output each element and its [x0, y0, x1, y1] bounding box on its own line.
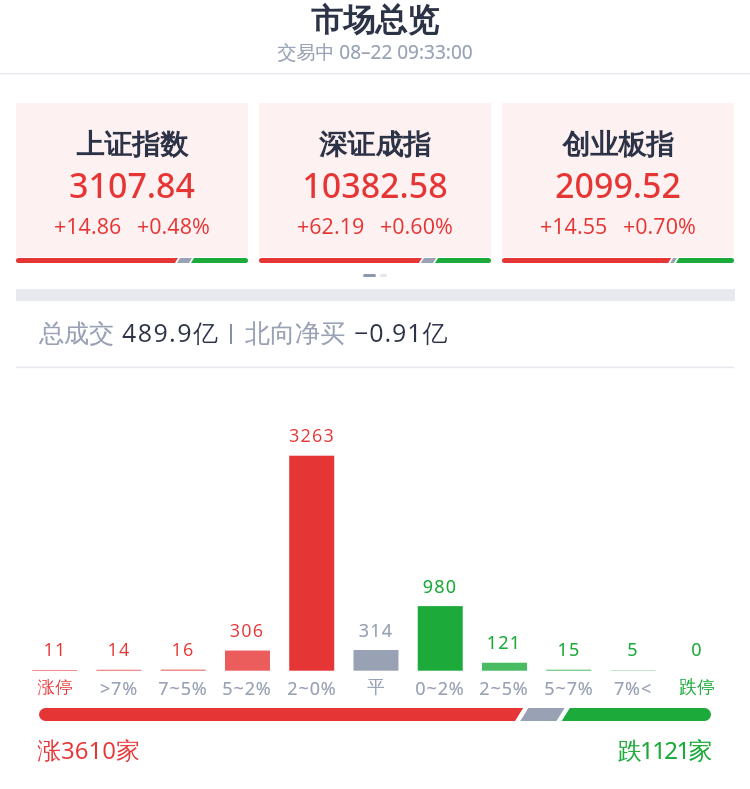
staticText: 16 — [151, 637, 215, 662]
staticText: 314 — [344, 618, 408, 643]
staticText: 14 — [87, 637, 151, 662]
button[interactable]: 上证指数 — [16, 103, 248, 263]
staticText: 5~7% — [537, 676, 601, 701]
staticText: >7% — [87, 676, 151, 701]
staticText: 10382.58 — [259, 162, 491, 208]
staticText: 11 — [23, 637, 87, 662]
staticText: 涨停 — [23, 676, 87, 698]
staticText: 0~2% — [408, 676, 472, 701]
staticText: +0.70% — [623, 211, 696, 240]
staticText: 2~0% — [280, 676, 344, 701]
staticText: 创业板指 — [502, 127, 734, 162]
staticText: 5 — [601, 637, 665, 662]
staticText: 7%< — [601, 676, 665, 701]
staticText: +14.55 — [540, 211, 608, 240]
staticText: 3263 — [280, 423, 344, 448]
staticText: +0.60% — [380, 211, 453, 240]
staticText: 121 — [472, 630, 536, 655]
staticText: 2~5% — [472, 676, 536, 701]
staticText: 交易中 08–22 09:33:00 — [0, 39, 750, 65]
staticText: +62.19 — [297, 211, 365, 240]
staticText: 平 — [344, 676, 408, 698]
staticText: 总成交 — [39, 318, 114, 349]
staticText: 489.9亿 — [122, 315, 220, 349]
staticText: 5~2% — [215, 676, 279, 701]
staticText: 0 — [665, 637, 729, 662]
button[interactable]: Page 1 — [363, 274, 376, 277]
button[interactable]: Page 2 — [380, 274, 387, 277]
staticText: +14.86 — [54, 211, 122, 240]
staticText: 7~5% — [151, 676, 215, 701]
staticText: +0.48% — [137, 211, 210, 240]
staticText: 涨3610家 — [37, 733, 140, 766]
staticText: 上证指数 — [16, 127, 248, 162]
staticText: 跌1121家 — [0, 733, 711, 766]
staticText: 306 — [215, 618, 279, 643]
staticText: 跌停 — [665, 676, 729, 698]
staticText: 深证成指 — [259, 127, 491, 162]
button[interactable]: 深证成指 — [259, 103, 491, 263]
button[interactable]: 创业板指 — [502, 103, 734, 263]
staticText: 北向净买 — [245, 318, 345, 349]
staticText: 15 — [537, 637, 601, 662]
staticText: 980 — [408, 574, 472, 599]
staticText: −0.91亿 — [354, 315, 449, 349]
staticText: 市场总览 — [0, 0, 750, 40]
staticText: 3107.84 — [16, 162, 248, 208]
button[interactable]: 总成交 — [0, 305, 750, 361]
staticText: 2099.52 — [502, 162, 734, 208]
